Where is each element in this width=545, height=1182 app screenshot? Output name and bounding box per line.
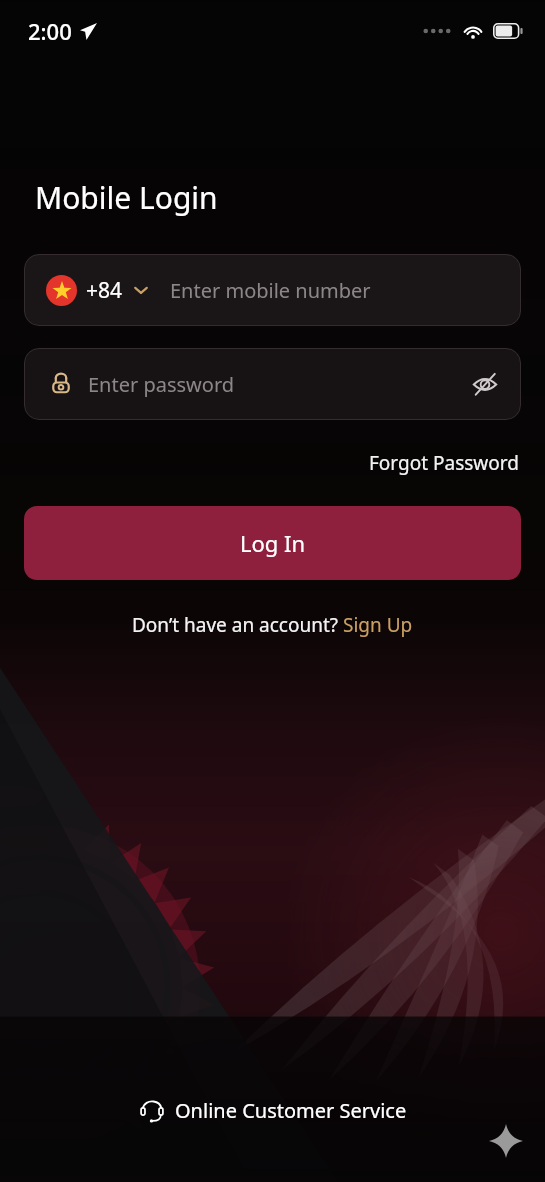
button[interactable]: Show password: [461, 360, 509, 408]
button[interactable]: Log In: [24, 506, 521, 580]
button[interactable]: Don’t have an account? Sign Up: [128, 608, 417, 642]
staticText: 2:00: [28, 16, 72, 46]
button[interactable]: Online Customer Service: [129, 1091, 417, 1130]
button[interactable]: +84: [24, 254, 521, 326]
staticText: Log In: [240, 528, 306, 558]
button[interactable]: Assistant: [483, 1118, 529, 1164]
staticText: +84: [86, 276, 123, 305]
staticText: Enter mobile number: [170, 277, 371, 304]
staticText: Enter password: [88, 371, 235, 398]
staticText: Don’t have an account? Sign Up: [132, 612, 413, 638]
button[interactable]: Enter password: [24, 348, 521, 420]
staticText: Mobile Login: [35, 177, 218, 218]
staticText: Online Customer Service: [175, 1097, 407, 1124]
staticText: Forgot Password: [369, 450, 519, 476]
button[interactable]: Forgot Password: [367, 446, 521, 480]
